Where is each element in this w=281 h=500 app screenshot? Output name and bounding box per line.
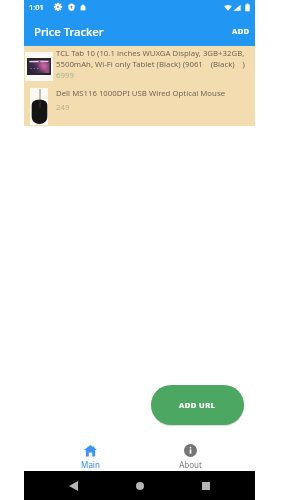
staticText: 1:01 (29, 2, 44, 12)
staticText: Price Tracker (34, 24, 104, 39)
button[interactable]: ADD URL (151, 385, 244, 425)
staticText: 6999 (56, 70, 74, 81)
staticText: TCL Tab 10 (10.1 inches WUXGA Display, 3… (56, 48, 254, 70)
staticText: Main (81, 459, 100, 470)
button[interactable]: Recent apps (198, 478, 214, 494)
staticText: ADD (232, 26, 250, 36)
button[interactable]: Dell MS116 1000DPI USB Wired Optical Mou… (24, 86, 255, 126)
button[interactable]: Main (66, 431, 114, 471)
button[interactable]: About (166, 431, 214, 471)
button[interactable]: Back (65, 478, 81, 494)
button[interactable]: Home (132, 478, 148, 494)
staticText: About (179, 459, 202, 470)
staticText: ADD URL (179, 400, 216, 410)
button[interactable]: TCL Tab 10 (10.1 inches WUXGA Display, 3… (24, 46, 255, 86)
button[interactable]: ADD (222, 18, 255, 44)
staticText: 249 (56, 102, 70, 113)
staticText: Dell MS116 1000DPI USB Wired Optical Mou… (56, 88, 226, 99)
